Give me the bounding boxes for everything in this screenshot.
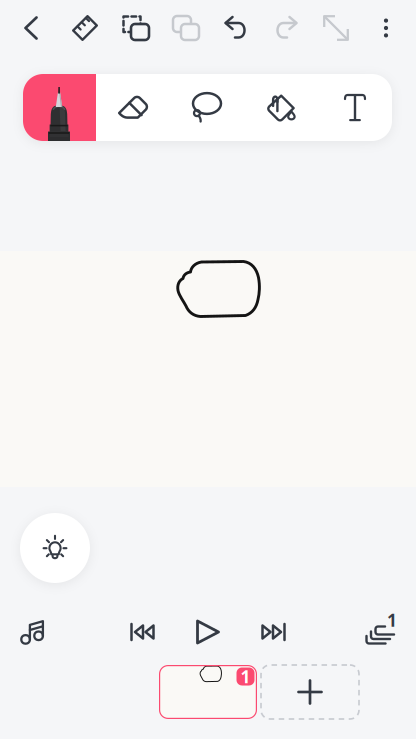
button[interactable]: Ruler [63,5,107,51]
button[interactable]: Pen tool [23,74,96,141]
button[interactable]: Text tool [318,74,392,141]
button[interactable]: Layers [360,614,402,654]
button[interactable]: Frame 1 [159,665,257,719]
button[interactable]: Redo [264,5,308,51]
button[interactable]: Undo [214,5,258,51]
button[interactable]: Onion skin [20,513,90,583]
button[interactable]: More options [364,5,408,51]
button[interactable]: Duplicate [114,5,158,51]
staticText: 1 [387,608,397,631]
button[interactable]: Next frame [252,612,292,652]
button[interactable]: Previous frame [124,612,164,652]
button[interactable]: Audio [12,612,54,652]
button[interactable]: Transform [314,5,358,51]
button[interactable]: Play [188,612,228,652]
button[interactable]: Paste [164,5,208,51]
button[interactable]: Eraser tool [96,74,170,141]
button[interactable]: Lasso tool [170,74,244,141]
button[interactable]: Back [10,5,54,51]
staticText: 1 [240,665,250,688]
button[interactable]: Fill tool [244,74,318,141]
button[interactable]: Add frame [261,665,359,719]
